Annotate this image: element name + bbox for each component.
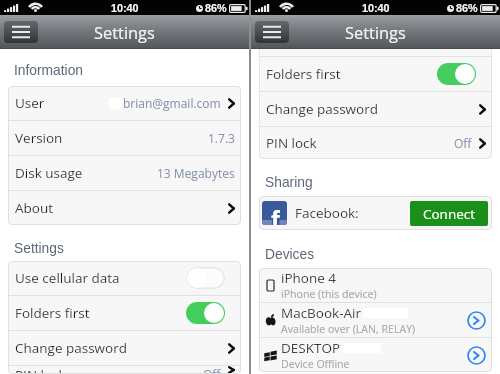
staticText: About (15, 199, 54, 217)
staticText: Settings (14, 241, 64, 256)
staticText: MacBook-Air (281, 304, 361, 322)
button[interactable]: Connect (410, 201, 488, 226)
button[interactable]: User (8, 86, 241, 120)
button[interactable]: PIN lock (8, 366, 241, 374)
staticText: Change password (15, 339, 127, 357)
staticText: Settings (345, 21, 406, 43)
staticText: PIN lock (15, 366, 66, 374)
staticText: Sharing (265, 175, 313, 190)
staticText: Folders first (15, 304, 90, 322)
staticText: 10:40 (362, 2, 390, 14)
button[interactable]: Menu (255, 21, 289, 43)
button[interactable]: Change password (259, 92, 492, 126)
button[interactable]: Toggle on (437, 63, 476, 85)
staticText: f (271, 203, 280, 225)
button[interactable]: Folders first (8, 296, 241, 330)
staticText: 86% (205, 2, 227, 14)
staticText: Devices (265, 247, 315, 262)
staticText: Off (454, 135, 472, 151)
staticText: brian@gmail.com (123, 95, 221, 111)
staticText: 10:40 (111, 2, 139, 14)
staticText: iPhone 4 (281, 269, 337, 287)
button[interactable]: PIN lock (259, 127, 492, 159)
staticText: Information (14, 63, 84, 78)
button[interactable]: Version (8, 121, 241, 155)
button[interactable]: Toggle off (186, 267, 225, 289)
staticText: Folders first (266, 65, 341, 83)
staticText: DESKTOP (281, 339, 341, 357)
staticText: 1.7.3 (208, 130, 235, 146)
button[interactable]: f (259, 196, 492, 230)
button[interactable]: MacBook-Air (259, 303, 492, 337)
staticText: Change password (266, 100, 378, 118)
button[interactable]: About (8, 191, 241, 225)
staticText: PIN lock (266, 134, 317, 152)
staticText: Facebook: (295, 204, 359, 222)
button[interactable]: Toggle on (186, 302, 225, 324)
button[interactable]: Disk usage (8, 156, 241, 190)
button[interactable]: Menu (4, 21, 38, 43)
staticText: Settings (94, 21, 155, 43)
staticText: 86% (456, 2, 478, 14)
staticText: Use cellular data (15, 269, 120, 287)
staticText: Disk usage (15, 164, 83, 182)
button[interactable]: Use cellular data (8, 261, 241, 295)
staticText: Version (15, 129, 63, 147)
staticText: Device Offline (281, 357, 350, 371)
staticText: User (15, 94, 45, 112)
staticText: Connect (423, 205, 476, 223)
staticText: 13 Megabytes (157, 165, 235, 181)
staticText: iPhone (this device) (281, 287, 377, 301)
button[interactable]: Open device (467, 346, 486, 365)
staticText: Available over (LAN, RELAY) (281, 322, 416, 336)
staticText: Off (203, 366, 221, 374)
button[interactable]: DESKTOP (259, 338, 492, 372)
button[interactable]: Change password (8, 331, 241, 365)
button[interactable]: iPhone 4 (259, 268, 492, 302)
button[interactable]: Open device (467, 311, 486, 330)
button[interactable]: Folders first (259, 57, 492, 91)
